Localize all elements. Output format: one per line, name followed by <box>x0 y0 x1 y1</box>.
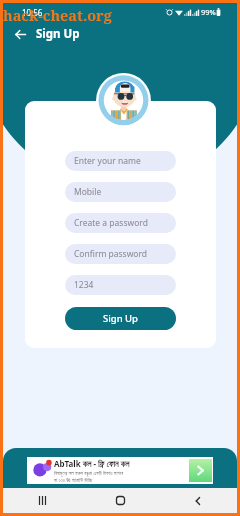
button[interactable]: Back <box>159 488 237 513</box>
staticText: hack-cheat.org <box>3 5 112 25</box>
button[interactable]: Back <box>11 25 29 43</box>
staticText: AbTalk কল - ফ্রি ফোন কল <box>54 458 130 469</box>
staticText: না ১০০ % গ্যারান্টি দিচ্ছি <box>54 477 93 484</box>
button[interactable]: AbTalk কল - ফ্রি ফোন কল <box>27 457 213 484</box>
staticText: বিনামূল্যে কল করুন বন্ধুরা একটি টাকাও লা… <box>54 470 124 477</box>
staticText: 1234 <box>74 279 94 291</box>
button[interactable]: Sign Up <box>65 307 176 330</box>
button[interactable]: Open ad <box>189 459 212 482</box>
button[interactable]: Mobile <box>65 182 176 202</box>
button[interactable]: Confirm password <box>65 244 176 264</box>
button[interactable]: Home <box>81 488 159 513</box>
staticText: Enter your name <box>74 155 141 167</box>
button[interactable]: Recents <box>3 488 81 513</box>
staticText: Confirm password <box>74 248 148 260</box>
staticText: Create a password <box>74 217 148 229</box>
button[interactable]: Enter your name <box>65 151 176 171</box>
staticText: Sign Up <box>103 312 139 325</box>
button[interactable]: Create a password <box>65 213 176 233</box>
button[interactable]: 1234 <box>65 275 176 295</box>
staticText: Mobile <box>74 186 102 198</box>
staticText: 10:56 <box>22 7 43 18</box>
staticText: Sign Up <box>36 26 80 42</box>
staticText: 99% <box>201 7 216 17</box>
